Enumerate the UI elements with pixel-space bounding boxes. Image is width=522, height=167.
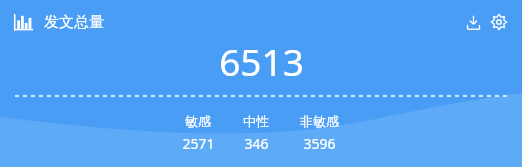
staticText: 6513	[219, 36, 304, 86]
button[interactable]: 敏感	[169, 113, 227, 153]
staticText: 敏感	[185, 113, 211, 129]
other: Statistics	[13, 12, 34, 33]
staticText: 中性	[243, 113, 269, 129]
staticText: 非敏感	[300, 113, 339, 129]
button[interactable]: 中性	[227, 113, 285, 153]
button[interactable]: 非敏感	[285, 113, 353, 153]
button[interactable]: Settings	[488, 11, 510, 33]
button[interactable]: Download	[462, 11, 484, 33]
staticText: 346	[244, 134, 269, 153]
staticText: 3596	[303, 134, 336, 153]
staticText: 发文总量	[44, 13, 104, 32]
staticText: 2571	[182, 134, 215, 153]
